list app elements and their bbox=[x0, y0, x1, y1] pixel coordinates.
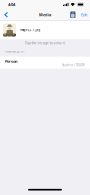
staticText: Tap the image to view it. bbox=[24, 40, 65, 45]
staticText: images_2.1.jpg bbox=[20, 28, 41, 32]
staticText: Edit bbox=[81, 12, 87, 17]
staticText: Person bbox=[5, 58, 18, 64]
button[interactable]: Edit bbox=[78, 9, 90, 20]
staticText: 4:04 bbox=[8, 2, 15, 7]
button[interactable]: Back bbox=[0, 9, 13, 20]
staticText: Media bbox=[39, 12, 51, 17]
staticText: Student / TUDOR bbox=[62, 63, 85, 67]
button[interactable]: images_2.1.jpg bbox=[0, 21, 90, 39]
staticText: REFERENCED BY bbox=[5, 50, 25, 53]
button[interactable]: Person bbox=[0, 57, 90, 69]
button[interactable]: Delete bbox=[67, 9, 78, 20]
